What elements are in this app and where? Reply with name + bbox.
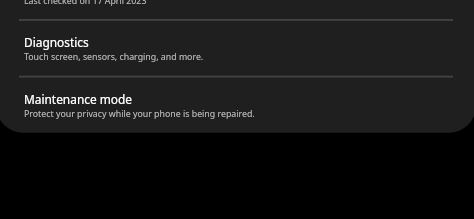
button[interactable]: Maintenance mode	[0, 76, 474, 133]
staticText: Diagnostics	[24, 34, 89, 50]
staticText: Protect your privacy while your phone is…	[24, 108, 255, 120]
button[interactable]: Diagnostics	[0, 20, 474, 76]
staticText: Last checked on 17 April 2023	[24, 0, 147, 7]
staticText: Touch screen, sensors, charging, and mor…	[24, 51, 204, 63]
button[interactable]: Last checked on 17 April 2023	[0, 0, 474, 20]
staticText: Maintenance mode	[24, 91, 133, 107]
